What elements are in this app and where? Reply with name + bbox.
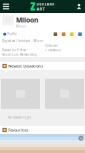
staticText: Needs Core Membership [2, 53, 37, 56]
button[interactable]: Newest Deviations [0, 62, 85, 70]
staticText: Digital art / Hobbyist [2, 39, 30, 43]
staticText: Favourites [8, 127, 28, 133]
button[interactable]: Badge [77, 31, 83, 37]
staticText: DEVIANT [36, 1, 54, 7]
staticText: Miloon [16, 16, 38, 24]
button[interactable]: Badge [52, 31, 58, 37]
staticText: × [80, 136, 82, 141]
button[interactable]: Menu [0, 0, 12, 13]
staticText: 5 Deviations [45, 48, 61, 52]
staticText: Deviant for 8 Years [2, 48, 26, 52]
staticText: Unknown [45, 44, 58, 47]
staticText: Profile [7, 32, 17, 36]
button[interactable]: Close [77, 134, 85, 142]
button[interactable]: Profile [2, 31, 18, 37]
staticText: No deviations yet [8, 116, 31, 119]
button[interactable]: Badge [69, 31, 75, 37]
staticText: Newest Deviations [8, 63, 43, 69]
button[interactable]: Account [73, 0, 85, 13]
staticText: ART [36, 6, 44, 12]
staticText: Miloon [33, 39, 43, 43]
button[interactable]: Badge [61, 31, 67, 37]
staticText: Miloon [16, 25, 26, 28]
button[interactable]: Favourites [0, 126, 85, 134]
